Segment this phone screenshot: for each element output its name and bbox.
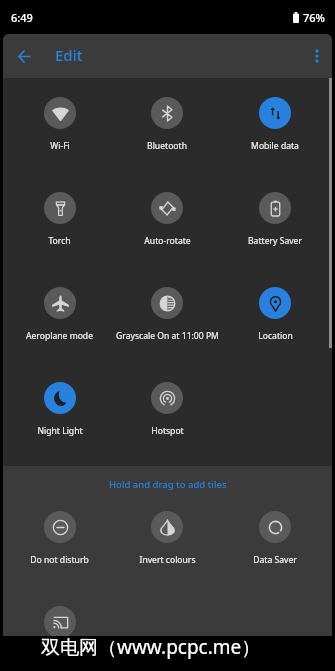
staticText: Invert colours: [139, 554, 196, 566]
button[interactable]: Location: [221, 268, 329, 363]
staticText: Battery Saver: [248, 235, 302, 247]
button[interactable]: More options: [301, 40, 332, 72]
button[interactable]: Hotspot: [113, 363, 221, 458]
staticText: Grayscale On at 11:00 PM: [116, 330, 219, 342]
button[interactable]: Cast: [6, 587, 113, 636]
button[interactable]: Wi-Fi: [6, 78, 113, 173]
staticText: 双电网（www.pcpc.me）: [41, 634, 261, 660]
staticText: Auto-rotate: [144, 235, 191, 247]
button[interactable]: Auto-rotate: [113, 173, 221, 268]
button[interactable]: Bluetooth: [113, 78, 221, 173]
button[interactable]: Back: [9, 41, 39, 71]
staticText: Hold and drag to add tiles: [109, 478, 227, 491]
button[interactable]: Do not disturb: [6, 492, 113, 587]
staticText: 6:49: [11, 10, 33, 25]
button[interactable]: Torch: [6, 173, 113, 268]
staticText: Do not disturb: [30, 554, 89, 566]
staticText: Night Light: [37, 425, 83, 437]
button[interactable]: Grayscale On at 11:00 PM: [113, 268, 221, 363]
button[interactable]: Mobile data: [221, 78, 329, 173]
staticText: Wi-Fi: [50, 140, 70, 152]
staticText: Hotspot: [151, 425, 184, 437]
staticText: 76%: [303, 10, 325, 25]
button[interactable]: Data Saver: [221, 492, 329, 587]
staticText: Bluetooth: [147, 140, 187, 152]
staticText: Location: [258, 330, 293, 342]
staticText: Edit: [55, 45, 83, 65]
button[interactable]: Aeroplane mode: [6, 268, 113, 363]
staticText: Mobile data: [251, 140, 299, 152]
button[interactable]: Invert colours: [113, 492, 221, 587]
button[interactable]: Night Light: [6, 363, 113, 458]
staticText: Torch: [48, 235, 71, 247]
staticText: Data Saver: [253, 554, 297, 566]
button[interactable]: Battery Saver: [221, 173, 329, 268]
staticText: Aeroplane mode: [26, 330, 93, 342]
